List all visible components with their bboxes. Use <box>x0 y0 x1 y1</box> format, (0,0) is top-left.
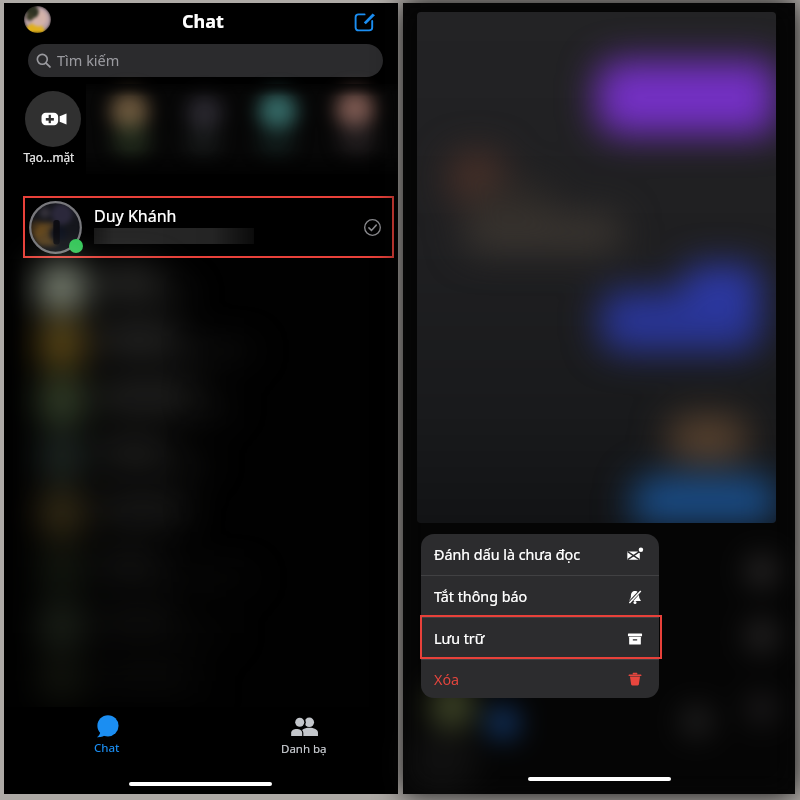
button[interactable]: Danh bạ <box>259 707 349 759</box>
staticText: Tạo...mặt <box>21 149 77 165</box>
button[interactable]: Đánh dấu là chưa đọc <box>421 534 659 575</box>
button[interactable]: Profile <box>24 6 51 33</box>
staticText: Danh bạ <box>281 741 327 757</box>
staticText: Tìm kiếm <box>57 50 120 70</box>
staticText: Chat <box>94 740 120 756</box>
staticText: Xóa <box>434 670 460 689</box>
staticText: Chat <box>182 9 224 34</box>
button[interactable]: Tạo phòng họp mặt <box>25 91 81 147</box>
staticText: Tắt thông báo <box>434 587 528 606</box>
button[interactable]: Tìm kiếm <box>28 44 383 77</box>
button[interactable]: Xóa <box>421 660 659 698</box>
button[interactable]: Lưu trữ <box>421 618 659 659</box>
button[interactable]: Duy Khánh <box>23 196 394 258</box>
button[interactable]: New message <box>355 11 375 31</box>
button[interactable]: Tắt thông báo <box>421 576 659 617</box>
button[interactable]: Chat <box>62 707 152 759</box>
staticText: Duy Khánh <box>94 205 177 227</box>
staticText: Đánh dấu là chưa đọc <box>434 545 581 564</box>
staticText: Lưu trữ <box>434 629 485 648</box>
